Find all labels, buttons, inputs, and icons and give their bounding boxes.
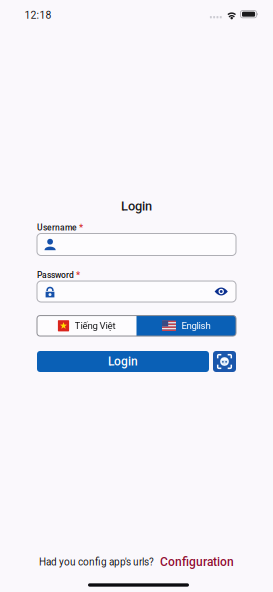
staticText: Password xyxy=(37,270,74,280)
button[interactable]: Login xyxy=(37,351,209,372)
staticText: * xyxy=(74,269,80,280)
staticText: Had you config app's urls? xyxy=(39,556,154,568)
staticText: 12:18 xyxy=(24,9,51,21)
button[interactable]: Username field xyxy=(37,233,236,255)
staticText: Tiếng Việt xyxy=(75,320,116,331)
staticText: English xyxy=(181,320,210,331)
staticText: Configuration xyxy=(160,555,234,569)
button[interactable]: Face ID login xyxy=(213,351,236,372)
staticText: * xyxy=(77,222,83,233)
staticText: Login xyxy=(121,198,152,213)
button[interactable]: Tiếng Việt xyxy=(37,316,136,336)
button[interactable]: Configuration xyxy=(160,555,234,569)
staticText: Username xyxy=(37,222,77,232)
button[interactable]: English xyxy=(136,316,236,336)
staticText: Login xyxy=(108,354,138,369)
button[interactable]: Password field xyxy=(37,281,236,302)
